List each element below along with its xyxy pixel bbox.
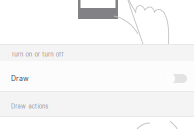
staticText: Turn on or turn off xyxy=(11,51,63,58)
button[interactable]: Draw actions xyxy=(0,92,194,116)
staticText: Draw actions xyxy=(11,103,48,110)
button[interactable]: Turn on or turn off xyxy=(0,45,194,61)
button[interactable]: Draw xyxy=(0,61,194,91)
staticText: Draw xyxy=(11,74,29,83)
